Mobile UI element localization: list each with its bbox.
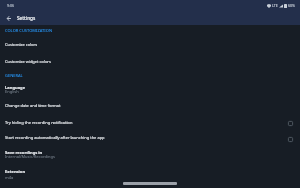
staticText: 9:06: [7, 3, 15, 8]
staticText: Customize widget colors: [5, 59, 51, 64]
button[interactable]: Try hiding the recording notification: [0, 114, 300, 130]
staticText: Settings: [17, 15, 36, 21]
button[interactable]: Save recordings in: [0, 147, 300, 164]
button[interactable]: Language: [0, 82, 300, 98]
staticText: Extension: [5, 169, 26, 175]
button[interactable]: Start recording automatically after laun…: [0, 129, 300, 145]
staticText: Language: [5, 85, 26, 91]
button[interactable]: Extension: [0, 166, 300, 183]
staticText: Try hiding the recording notification: [5, 120, 288, 125]
button[interactable]: Change date and time format: [0, 97, 300, 113]
staticText: Save recordings in: [5, 150, 43, 156]
staticText: Change date and time format: [5, 103, 61, 108]
staticText: Start recording automatically after laun…: [5, 135, 288, 140]
staticText: LTE: [272, 3, 278, 8]
staticText: English: [5, 89, 19, 94]
staticText: 60%: [288, 3, 296, 8]
staticText: GENERAL: [5, 73, 23, 78]
staticText: COLOR CUSTOMIZATION: [5, 28, 52, 33]
staticText: m4a: [5, 175, 14, 180]
staticText: Customize colors: [5, 42, 38, 47]
button[interactable]: Customize widget colors: [0, 53, 300, 70]
button[interactable]: Customize colors: [0, 36, 300, 53]
button[interactable]: Back: [0, 11, 16, 25]
staticText: Internal/Music/Recordings: [5, 154, 55, 159]
